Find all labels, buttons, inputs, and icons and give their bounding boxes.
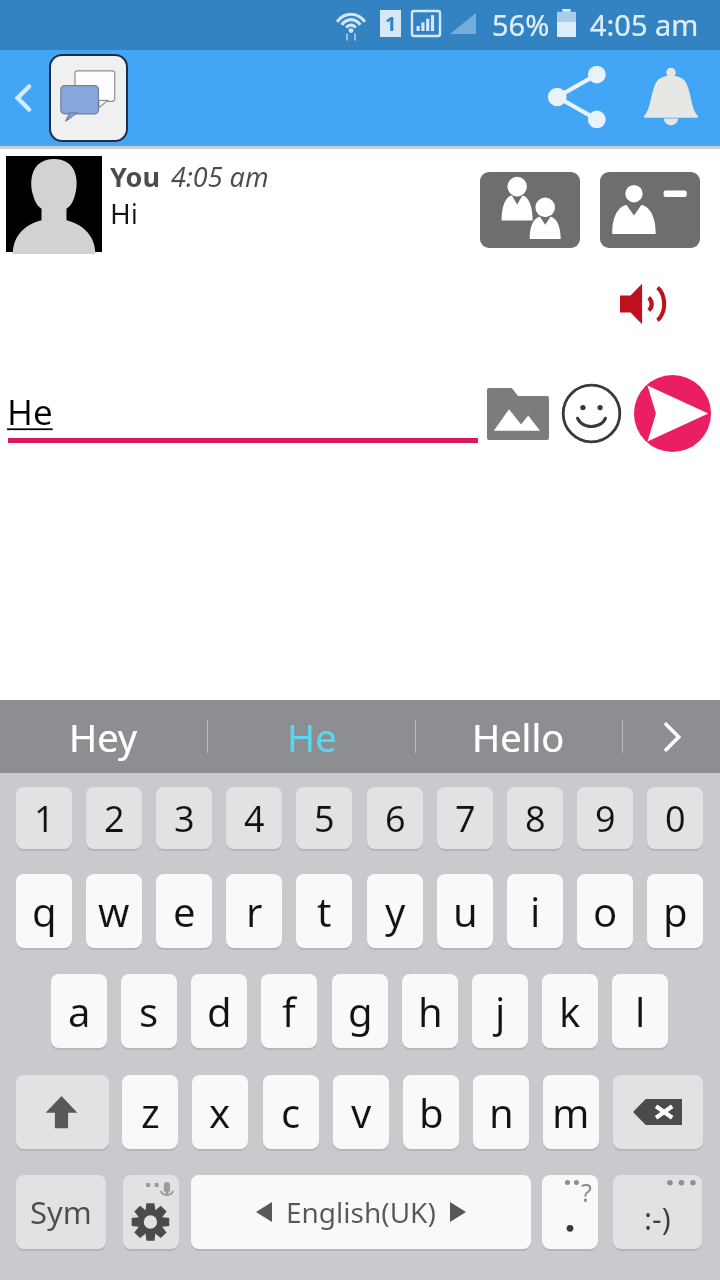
button[interactable]: 2 [86, 787, 142, 849]
button[interactable]: Emoji [557, 379, 626, 447]
staticText: ? [581, 1175, 592, 1209]
button[interactable]: z [122, 1075, 178, 1149]
button[interactable]: Settings [123, 1175, 179, 1249]
button[interactable]: 4 [226, 787, 282, 849]
button[interactable]: Emoticon [613, 1175, 702, 1249]
button[interactable]: Remove person [600, 172, 700, 248]
button[interactable]: 1 [16, 787, 72, 849]
button[interactable]: h [402, 974, 458, 1048]
button[interactable]: o [577, 874, 633, 948]
button[interactable]: t [296, 874, 352, 948]
staticText: 4:05 am [171, 158, 269, 195]
button[interactable]: b [403, 1075, 459, 1149]
button[interactable]: 6 [367, 787, 423, 849]
staticText: Hi [110, 194, 138, 232]
button[interactable]: Backspace [613, 1075, 703, 1149]
staticText: z [141, 1085, 160, 1139]
staticText: 0 [665, 794, 686, 843]
staticText: 9 [595, 794, 616, 843]
staticText: 8 [525, 794, 546, 843]
staticText: 5 [314, 794, 335, 843]
button[interactable]: 8 [507, 787, 563, 849]
staticText: w [98, 884, 130, 938]
button[interactable]: i [507, 874, 563, 948]
button[interactable]: More suggestions [623, 700, 720, 773]
staticText: 6 [385, 794, 406, 843]
button[interactable]: Hello [415, 700, 622, 773]
button[interactable]: x [192, 1075, 248, 1149]
button[interactable]: 5 [296, 787, 352, 849]
button[interactable]: Share [538, 64, 616, 130]
staticText: c [281, 1085, 301, 1139]
staticText: h [418, 984, 443, 1038]
button[interactable]: Notifications [632, 64, 710, 130]
staticText: You [110, 158, 160, 195]
button[interactable]: Back [0, 74, 48, 122]
button[interactable]: Gallery [479, 380, 557, 448]
staticText: a [68, 984, 91, 1038]
button[interactable]: r [226, 874, 282, 948]
staticText: Sym [30, 1191, 92, 1233]
button[interactable]: s [121, 974, 177, 1048]
button[interactable]: q [16, 874, 72, 948]
button[interactable]: 9 [577, 787, 633, 849]
button[interactable]: j [472, 974, 528, 1048]
button[interactable]: u [437, 874, 493, 948]
button[interactable]: English(UK) [191, 1175, 531, 1249]
staticText: v [351, 1085, 372, 1139]
button[interactable]: f [261, 974, 317, 1048]
staticText: f [282, 984, 296, 1038]
staticText: He [7, 388, 53, 436]
staticText: m [552, 1085, 590, 1139]
button[interactable]: Speaker [608, 274, 680, 334]
staticText: e [173, 884, 196, 938]
button[interactable]: g [332, 974, 388, 1048]
button[interactable]: Conversation icon [51, 56, 126, 140]
staticText: :-) [644, 1198, 671, 1239]
button[interactable]: k [542, 974, 598, 1048]
staticText: 1 [34, 794, 55, 843]
button[interactable]: Shift [16, 1075, 109, 1149]
button[interactable]: v [333, 1075, 389, 1149]
staticText: x [209, 1085, 231, 1139]
button[interactable]: d [191, 974, 247, 1048]
staticText: 2 [104, 794, 125, 843]
staticText: 7 [455, 794, 476, 843]
staticText: s [139, 984, 159, 1038]
staticText: l [635, 984, 646, 1038]
button[interactable]: c [263, 1075, 319, 1149]
button[interactable]: Sym [16, 1175, 106, 1249]
button[interactable]: w [86, 874, 142, 948]
staticText: 3 [174, 794, 195, 843]
staticText: 4:05 am [590, 5, 699, 44]
staticText: d [207, 984, 232, 1038]
staticText: 1 [385, 10, 397, 37]
button[interactable]: 0 [647, 787, 703, 849]
button[interactable]: Send [634, 375, 711, 452]
button[interactable]: 7 [437, 787, 493, 849]
button[interactable]: p [647, 874, 703, 948]
button[interactable]: a [51, 974, 107, 1048]
button[interactable]: Period [542, 1175, 598, 1249]
staticText: t [317, 884, 332, 938]
button[interactable]: He [208, 700, 415, 773]
staticText: k [559, 984, 581, 1038]
staticText: 4 [244, 794, 265, 843]
button[interactable]: y [367, 874, 423, 948]
staticText: English(UK) [286, 1193, 436, 1231]
button[interactable]: n [473, 1075, 529, 1149]
button[interactable]: 3 [156, 787, 212, 849]
staticText: j [495, 984, 506, 1038]
button[interactable]: l [612, 974, 668, 1048]
button[interactable]: e [156, 874, 212, 948]
staticText: b [419, 1085, 444, 1139]
staticText: g [348, 984, 373, 1038]
staticText: 56% [492, 5, 550, 44]
button[interactable]: Invite people [480, 172, 580, 248]
staticText: p [663, 884, 688, 938]
button[interactable]: Hey [0, 700, 207, 773]
staticText: r [246, 884, 263, 938]
staticText: n [489, 1085, 514, 1139]
button[interactable]: m [543, 1075, 599, 1149]
staticText: Hello [472, 711, 565, 763]
